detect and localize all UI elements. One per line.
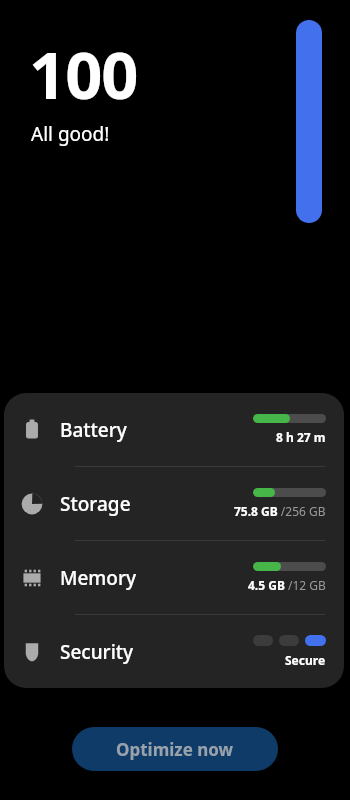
other: Device score gauge	[296, 20, 322, 223]
staticText: Memory	[60, 565, 137, 591]
staticText: 100	[29, 30, 138, 119]
staticText: Security	[60, 639, 134, 665]
button[interactable]: Security	[4, 615, 344, 688]
staticText: 4.5 GB /12 GB	[248, 577, 326, 593]
staticText: All good!	[31, 121, 110, 147]
button[interactable]: Battery	[4, 393, 344, 466]
staticText: 75.8 GB /256 GB	[234, 503, 326, 519]
button[interactable]: Memory	[4, 541, 344, 614]
staticText: Storage	[60, 491, 131, 517]
staticText: 8 h 27 m	[276, 429, 326, 445]
button[interactable]: Storage	[4, 467, 344, 540]
button[interactable]: Optimize now	[72, 727, 278, 771]
staticText: Secure	[285, 652, 326, 668]
staticText: Battery	[60, 417, 127, 443]
staticText: Optimize now	[116, 738, 234, 761]
